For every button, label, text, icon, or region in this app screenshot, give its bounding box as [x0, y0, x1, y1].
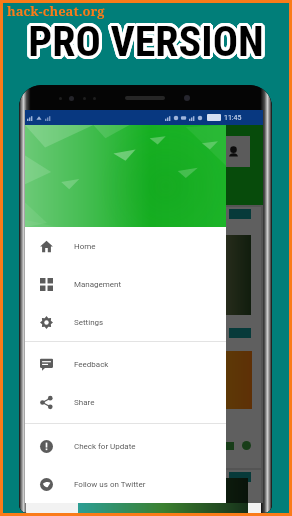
- button[interactable]: Check for Update: [25, 427, 226, 465]
- button[interactable]: Management: [25, 265, 226, 303]
- staticText: PRO VERSION: [26, 15, 262, 64]
- staticText: PRO VERSION: [27, 20, 263, 69]
- staticText: PRO VERSION: [30, 17, 266, 66]
- button[interactable]: Share: [25, 383, 226, 421]
- staticText: Feedback: [74, 360, 109, 369]
- staticText: hack-cheat.org: [7, 2, 105, 20]
- staticText: PRO VERSION: [27, 15, 263, 64]
- staticText: PRO VERSION: [25, 17, 261, 66]
- staticText: PRO VERSION: [29, 14, 265, 63]
- staticText: PRO VERSION: [27, 17, 263, 66]
- staticText: Settings: [74, 318, 104, 327]
- staticText: PRO VERSION: [29, 16, 265, 65]
- staticText: PRO VERSION: [28, 14, 264, 63]
- staticText: PRO VERSION: [27, 14, 263, 63]
- staticText: PRO VERSION: [29, 19, 265, 68]
- staticText: 11:45: [224, 114, 242, 122]
- staticText: PRO VERSION: [26, 16, 262, 65]
- staticText: PRO VERSION: [31, 16, 267, 65]
- staticText: PRO VERSION: [28, 17, 264, 66]
- staticText: Share: [74, 398, 95, 407]
- staticText: PRO VERSION: [25, 16, 261, 65]
- staticText: PRO VERSION: [26, 17, 262, 66]
- staticText: PRO VERSION: [30, 15, 266, 64]
- staticText: PRO VERSION: [29, 18, 265, 67]
- staticText: PRO VERSION: [31, 17, 267, 66]
- staticText: PRO VERSION: [28, 15, 264, 64]
- staticText: Management: [74, 280, 122, 289]
- staticText: PRO VERSION: [30, 18, 266, 67]
- staticText: PRO VERSION: [27, 18, 263, 67]
- staticText: PRO VERSION: [28, 17, 264, 66]
- button[interactable]: Follow us on Twitter: [25, 465, 226, 503]
- staticText: Check for Update: [74, 442, 136, 451]
- staticText: PRO VERSION: [28, 18, 264, 67]
- button[interactable]: Home: [25, 227, 226, 265]
- staticText: PRO VERSION: [26, 18, 262, 67]
- staticText: Home: [74, 242, 96, 251]
- staticText: PRO VERSION: [29, 17, 265, 66]
- staticText: PRO VERSION: [27, 19, 263, 68]
- staticText: PRO VERSION: [30, 16, 266, 65]
- staticText: PRO VERSION: [30, 19, 266, 68]
- staticText: PRO VERSION: [27, 16, 263, 65]
- button[interactable]: Feedback: [25, 345, 226, 383]
- staticText: PRO VERSION: [26, 19, 262, 68]
- staticText: PRO VERSION: [31, 18, 267, 67]
- staticText: PRO VERSION: [29, 15, 265, 64]
- staticText: PRO VERSION: [28, 19, 264, 68]
- staticText: PRO VERSION: [28, 20, 264, 69]
- button[interactable]: Settings: [25, 303, 226, 341]
- staticText: Follow us on Twitter: [74, 480, 146, 489]
- staticText: PRO VERSION: [28, 16, 264, 65]
- staticText: PRO VERSION: [29, 20, 265, 69]
- staticText: Tools: [35, 183, 53, 191]
- staticText: PRO VERSION: [25, 18, 261, 67]
